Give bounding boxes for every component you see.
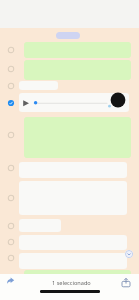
button[interactable]: Share <box>119 276 133 290</box>
button[interactable]: Select message <box>5 252 17 264</box>
button[interactable]: Message selected <box>5 97 17 109</box>
button[interactable]: Select message <box>5 63 17 75</box>
button[interactable] <box>19 81 58 90</box>
button[interactable]: Select message <box>5 220 17 232</box>
button[interactable]: Select message <box>5 80 17 92</box>
button[interactable] <box>56 32 80 39</box>
button[interactable]: Select message <box>5 129 17 141</box>
button[interactable]: Scroll to bottom <box>125 250 133 258</box>
button[interactable] <box>19 93 129 112</box>
button[interactable]: Select message <box>5 44 17 56</box>
button[interactable]: Forward <box>6 276 16 286</box>
staticText: 1 seleccionado <box>52 279 91 287</box>
button[interactable] <box>24 270 131 284</box>
button[interactable]: Select message <box>5 192 17 204</box>
button[interactable]: Select message <box>5 162 17 174</box>
button[interactable]: Select message <box>5 236 17 248</box>
